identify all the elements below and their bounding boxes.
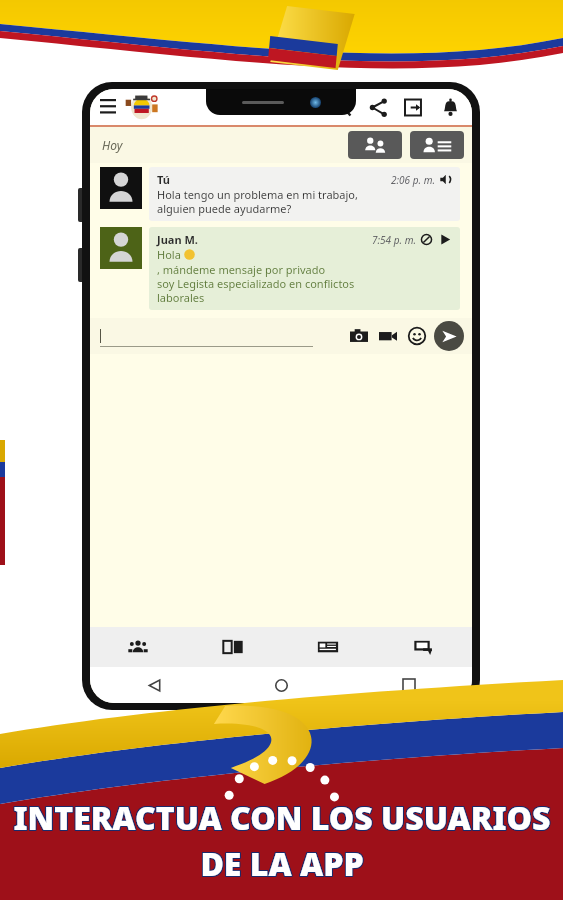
- button[interactable]: Chats: [376, 627, 472, 667]
- staticText: INTERACTUA CON LOS USUARIOS: [13, 796, 551, 840]
- staticText: Tú: [157, 172, 170, 187]
- staticText: DE LA APP: [201, 842, 365, 886]
- button[interactable]: Tú: [149, 167, 460, 221]
- staticText: INTERACTUA CON LOS USUARIOS: [14, 796, 552, 840]
- button[interactable]: Profile: [410, 131, 464, 159]
- button[interactable]: Video: [377, 325, 399, 347]
- button[interactable]: Read: [185, 627, 280, 667]
- staticText: INTERACTUA CON LOS USUARIOS: [12, 796, 550, 840]
- button[interactable]: Send: [434, 321, 464, 351]
- button[interactable]: Contacts: [348, 131, 402, 159]
- button[interactable]: News: [280, 627, 376, 667]
- button[interactable]: Recents: [345, 667, 472, 703]
- button[interactable]: Share: [365, 94, 391, 120]
- staticText: INTERACTUA CON LOS USUARIOS: [13, 797, 551, 841]
- staticText: INTERACTUA CON LOS USUARIOS: [14, 795, 552, 839]
- button[interactable]: Logout: [401, 94, 427, 120]
- staticText: INTERACTUA CON LOS USUARIOS: [12, 795, 550, 839]
- staticText: DE LA APP: [199, 841, 363, 885]
- staticText: Hola: [157, 247, 184, 262]
- button[interactable]: Camera: [348, 325, 370, 347]
- staticText: INTERACTUA CON LOS USUARIOS: [13, 795, 551, 839]
- staticText: INTERACTUA CON LOS USUARIOS: [14, 797, 552, 841]
- button[interactable]: Back: [90, 667, 218, 703]
- staticText: DE LA APP: [201, 841, 365, 885]
- staticText: Hoy: [102, 137, 123, 153]
- staticText: DE LA APP: [200, 841, 364, 885]
- staticText: Juan M.: [157, 232, 198, 247]
- staticText: DE LA APP: [200, 842, 364, 886]
- staticText: 7:54 p. m.: [372, 233, 416, 247]
- staticText: DE LA APP: [199, 843, 363, 887]
- button[interactable]: Notifications: [437, 94, 463, 120]
- button[interactable]: Groups: [90, 627, 185, 667]
- staticText: DE LA APP: [201, 843, 365, 887]
- button[interactable]: Search: [329, 94, 355, 120]
- button[interactable]: [100, 325, 342, 347]
- staticText: Hola tengo un problema en mi trabajo, al…: [157, 187, 358, 216]
- staticText: DE LA APP: [199, 842, 363, 886]
- button[interactable]: Juan M.: [149, 227, 460, 310]
- staticText: 2:06 p. m.: [391, 173, 435, 187]
- button[interactable]: Menu: [97, 96, 119, 118]
- staticText: DE LA APP: [200, 843, 364, 887]
- button[interactable]: Home: [218, 667, 345, 703]
- staticText: INTERACTUA CON LOS USUARIOS: [12, 797, 550, 841]
- button[interactable]: Emoji: [406, 325, 428, 347]
- staticText: , mándeme mensaje por privado soy Legist…: [157, 262, 355, 305]
